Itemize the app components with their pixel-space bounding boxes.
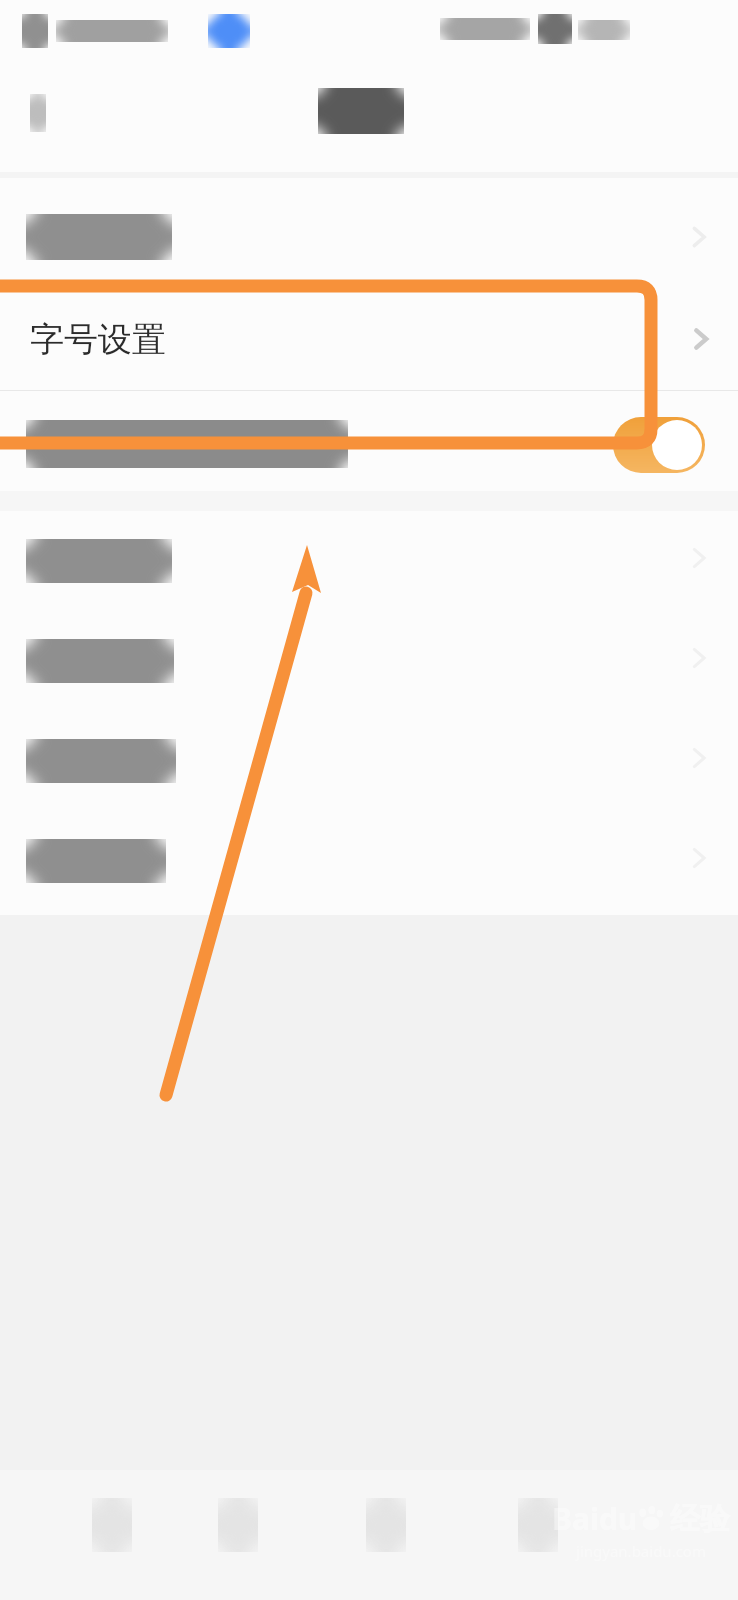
- button[interactable]: Auto play video on Wi-Fi toggle: [613, 417, 705, 473]
- button[interactable]: 字号设置: [0, 288, 738, 390]
- staticText: 字号设置: [30, 318, 166, 361]
- button[interactable]: [0, 611, 738, 711]
- staticText: Baidu: [552, 1498, 638, 1539]
- button[interactable]: Back: [10, 80, 76, 146]
- button[interactable]: Navigation item: [66, 1478, 176, 1588]
- button[interactable]: [0, 711, 738, 811]
- button[interactable]: Navigation item: [492, 1478, 602, 1588]
- button[interactable]: [0, 511, 738, 611]
- button[interactable]: [0, 811, 738, 911]
- button[interactable]: [0, 178, 738, 278]
- button[interactable]: Navigation item: [192, 1478, 302, 1588]
- button[interactable]: Navigation item: [340, 1478, 450, 1588]
- button[interactable]: [0, 391, 738, 491]
